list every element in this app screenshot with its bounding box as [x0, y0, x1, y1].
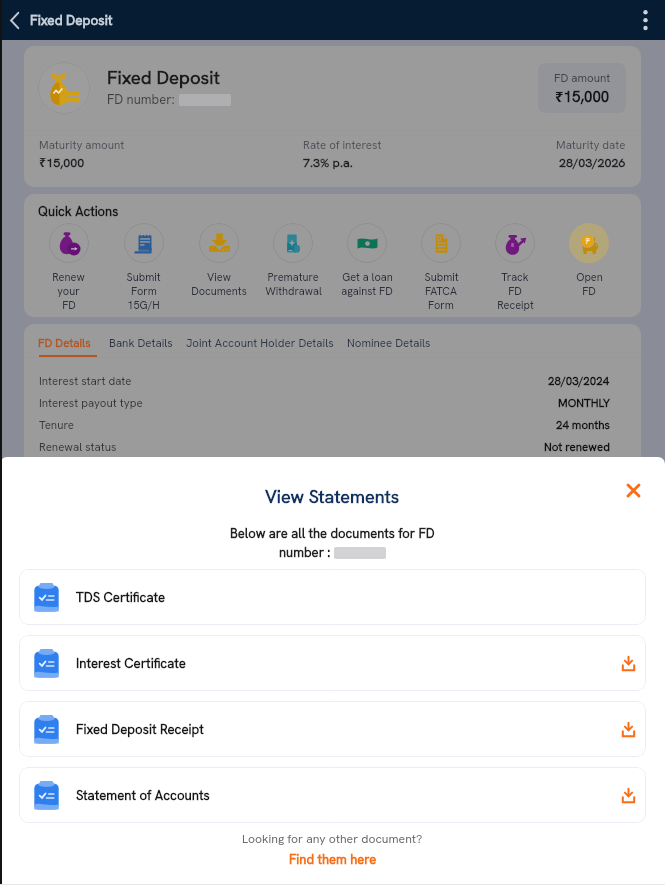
staticText: Interest Certificate	[76, 655, 186, 672]
staticText: FD number:	[107, 91, 179, 108]
button[interactable]: Get a loan	[330, 223, 404, 298]
button[interactable]: Nominee Details	[347, 335, 431, 355]
button[interactable]: Find them here	[289, 851, 377, 868]
button[interactable]: Premature	[256, 223, 330, 298]
staticText: Below are all the documents for FD	[230, 525, 435, 542]
staticText: 7.3% p.a.	[303, 154, 353, 170]
staticText: Maturity amount	[39, 137, 125, 152]
button[interactable]: Download	[616, 651, 640, 675]
staticText: Documents	[191, 284, 247, 298]
staticText: Premature	[267, 270, 319, 284]
staticText: 15G/H	[127, 298, 160, 312]
staticText: Open	[576, 270, 603, 284]
staticText: Withdrawal	[265, 284, 322, 298]
staticText: 24 months	[556, 417, 610, 432]
button[interactable]: Close	[617, 474, 649, 506]
staticText: Get a loan	[342, 270, 393, 284]
staticText: Nominee Details	[347, 335, 431, 350]
staticText: FD	[508, 284, 522, 298]
staticText: Form	[131, 284, 157, 298]
staticText: 28/03/2026	[559, 154, 626, 170]
button[interactable]: More options	[625, 0, 665, 40]
staticText: Interest start date	[39, 373, 132, 388]
button[interactable]: Download	[616, 717, 640, 741]
staticText: FD Details	[38, 335, 91, 350]
staticText: Rate of interest	[303, 137, 382, 152]
staticText: Renew	[52, 270, 85, 284]
staticText: Joint Account Holder Details	[186, 335, 334, 350]
staticText: Statement of Accounts	[76, 787, 210, 804]
staticText: Bank Details	[109, 335, 173, 350]
staticText: View Statements	[265, 485, 400, 508]
button[interactable]: Open	[552, 223, 626, 298]
staticText: TDS Certificate	[76, 589, 166, 606]
staticText: Looking for any other document?	[242, 831, 423, 847]
staticText: FD amount	[554, 70, 611, 85]
staticText: Maturity date	[556, 137, 626, 152]
button[interactable]: Joint Account Holder Details	[186, 335, 334, 355]
staticText: against FD	[341, 284, 393, 298]
staticText: Tenure	[39, 417, 75, 432]
staticText: Renewal status	[39, 439, 117, 454]
staticText: 28/03/2024	[548, 373, 610, 388]
button[interactable]: Statement of Accounts	[19, 767, 646, 823]
staticText: FATCA	[425, 284, 457, 298]
staticText: Not renewed	[544, 439, 610, 454]
staticText: FD	[582, 284, 596, 298]
button[interactable]: Track	[478, 223, 552, 312]
staticText: your	[57, 284, 80, 298]
staticText: Submit	[424, 270, 459, 284]
staticText: Fixed Deposit	[30, 11, 113, 29]
button[interactable]: Submit	[106, 223, 181, 312]
staticText: Fixed Deposit Receipt	[76, 721, 204, 738]
button[interactable]: Interest Certificate	[19, 635, 646, 691]
staticText: FD	[62, 298, 76, 312]
button[interactable]: Submit	[404, 223, 478, 312]
staticText: Track	[501, 270, 529, 284]
button[interactable]: FD Details	[38, 335, 96, 357]
staticText: View	[207, 270, 231, 284]
button[interactable]: Download	[616, 783, 640, 807]
staticText: Interest payout type	[39, 395, 143, 410]
button[interactable]: Fixed Deposit Receipt	[19, 701, 646, 757]
staticText: MONTHLY	[558, 395, 610, 410]
staticText: Receipt	[497, 298, 534, 312]
staticText: ₹15,000	[39, 154, 85, 171]
staticText: Find them here	[289, 851, 377, 868]
button[interactable]: Bank Details	[109, 335, 173, 355]
button[interactable]: TDS Certificate	[19, 569, 646, 625]
staticText: Quick Actions	[38, 203, 119, 220]
staticText: Submit	[126, 270, 161, 284]
staticText: Form	[428, 298, 454, 312]
button[interactable]: Renew	[31, 223, 106, 312]
button[interactable]: View	[181, 223, 256, 298]
staticText: Fixed Deposit	[107, 65, 220, 89]
staticText: number :	[279, 544, 334, 561]
button[interactable]: Back	[0, 0, 29, 40]
staticText: ₹15,000	[555, 86, 610, 107]
